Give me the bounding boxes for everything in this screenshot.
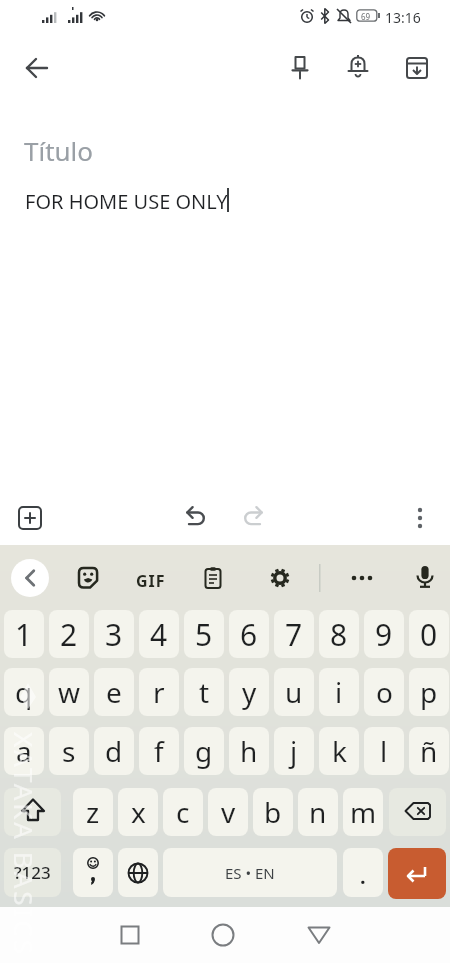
- button[interactable]: p: [409, 668, 449, 716]
- button[interactable]: [297, 913, 341, 957]
- button[interactable]: [85, 4, 109, 28]
- button[interactable]: [388, 848, 446, 899]
- button[interactable]: v: [208, 788, 248, 836]
- staticText: z: [86, 793, 100, 831]
- staticText: 5: [195, 614, 213, 655]
- button[interactable]: b: [253, 788, 293, 836]
- button[interactable]: [258, 556, 302, 600]
- staticText: ?123: [14, 861, 51, 884]
- button[interactable]: 8: [319, 610, 359, 658]
- button[interactable]: [73, 848, 113, 897]
- staticText: g: [195, 732, 213, 770]
- button[interactable]: [8, 496, 52, 540]
- button[interactable]: [231, 496, 275, 540]
- button[interactable]: [340, 556, 384, 600]
- button[interactable]: [336, 46, 380, 90]
- button[interactable]: ñ: [409, 727, 449, 775]
- button[interactable]: [295, 4, 319, 28]
- staticText: a: [16, 732, 32, 770]
- button[interactable]: [4, 788, 61, 836]
- staticText: j: [290, 732, 298, 770]
- button[interactable]: t: [184, 668, 224, 716]
- button[interactable]: [174, 496, 218, 540]
- staticText: 7: [285, 614, 303, 655]
- button[interactable]: q: [4, 668, 44, 716]
- staticText: 9: [375, 614, 393, 655]
- button[interactable]: o: [364, 668, 404, 716]
- staticText: o: [376, 673, 393, 711]
- button[interactable]: e: [94, 668, 134, 716]
- staticText: i: [335, 673, 343, 711]
- button[interactable]: 5: [184, 610, 224, 658]
- button[interactable]: 6: [229, 610, 269, 658]
- staticText: 6: [240, 614, 258, 655]
- button[interactable]: h: [229, 727, 269, 775]
- button[interactable]: s: [49, 727, 89, 775]
- button[interactable]: [395, 46, 439, 90]
- staticText: ñ: [420, 732, 438, 770]
- button[interactable]: c: [163, 788, 203, 836]
- staticText: x: [131, 793, 146, 831]
- staticText: p: [420, 673, 438, 711]
- button[interactable]: [64, 4, 88, 28]
- staticText: b: [264, 793, 282, 831]
- button[interactable]: [11, 559, 49, 597]
- staticText: v: [221, 793, 236, 831]
- button[interactable]: ES • EN: [163, 848, 337, 897]
- staticText: 69: [361, 11, 371, 22]
- button[interactable]: m: [343, 788, 383, 836]
- button[interactable]: j: [274, 727, 314, 775]
- button[interactable]: r: [139, 668, 179, 716]
- button[interactable]: a: [4, 727, 44, 775]
- button[interactable]: [191, 556, 235, 600]
- button[interactable]: z: [73, 788, 113, 836]
- button[interactable]: w: [49, 668, 89, 716]
- button[interactable]: [398, 496, 442, 540]
- button[interactable]: g: [184, 727, 224, 775]
- staticText: h: [240, 732, 258, 770]
- staticText: f: [154, 732, 164, 770]
- button[interactable]: [403, 556, 447, 600]
- button[interactable]: 3: [94, 610, 134, 658]
- staticText: GIF: [136, 570, 166, 592]
- button[interactable]: ?123: [4, 848, 61, 897]
- button[interactable]: [332, 4, 356, 28]
- button[interactable]: [389, 788, 446, 836]
- staticText: c: [176, 793, 190, 831]
- staticText: s: [62, 732, 76, 770]
- button[interactable]: i: [319, 668, 359, 716]
- button[interactable]: [38, 4, 62, 28]
- button[interactable]: 9: [364, 610, 404, 658]
- staticText: e: [106, 673, 122, 711]
- button[interactable]: l: [364, 727, 404, 775]
- button[interactable]: [66, 556, 110, 600]
- button[interactable]: y: [229, 668, 269, 716]
- button[interactable]: n: [298, 788, 338, 836]
- button[interactable]: x: [118, 788, 158, 836]
- button[interactable]: 1: [4, 610, 44, 658]
- staticText: u: [285, 673, 303, 711]
- button[interactable]: [118, 848, 158, 897]
- button[interactable]: [15, 46, 59, 90]
- button[interactable]: .: [343, 848, 383, 897]
- staticText: .: [360, 863, 366, 890]
- button[interactable]: [108, 913, 152, 957]
- button[interactable]: f: [139, 727, 179, 775]
- button[interactable]: [201, 913, 245, 957]
- staticText: 4: [150, 614, 168, 655]
- button[interactable]: 7: [274, 610, 314, 658]
- button[interactable]: k: [319, 727, 359, 775]
- button[interactable]: [278, 46, 322, 90]
- staticText: q: [15, 673, 33, 711]
- staticText: Título: [24, 133, 94, 168]
- button[interactable]: 0: [409, 610, 449, 658]
- button[interactable]: GIF: [136, 570, 166, 592]
- button[interactable]: d: [94, 727, 134, 775]
- staticText: 2: [60, 614, 78, 655]
- staticText: 0: [420, 614, 438, 655]
- staticText: 3: [105, 614, 123, 655]
- button[interactable]: u: [274, 668, 314, 716]
- button[interactable]: 4: [139, 610, 179, 658]
- button[interactable]: [313, 4, 337, 28]
- button[interactable]: 2: [49, 610, 89, 658]
